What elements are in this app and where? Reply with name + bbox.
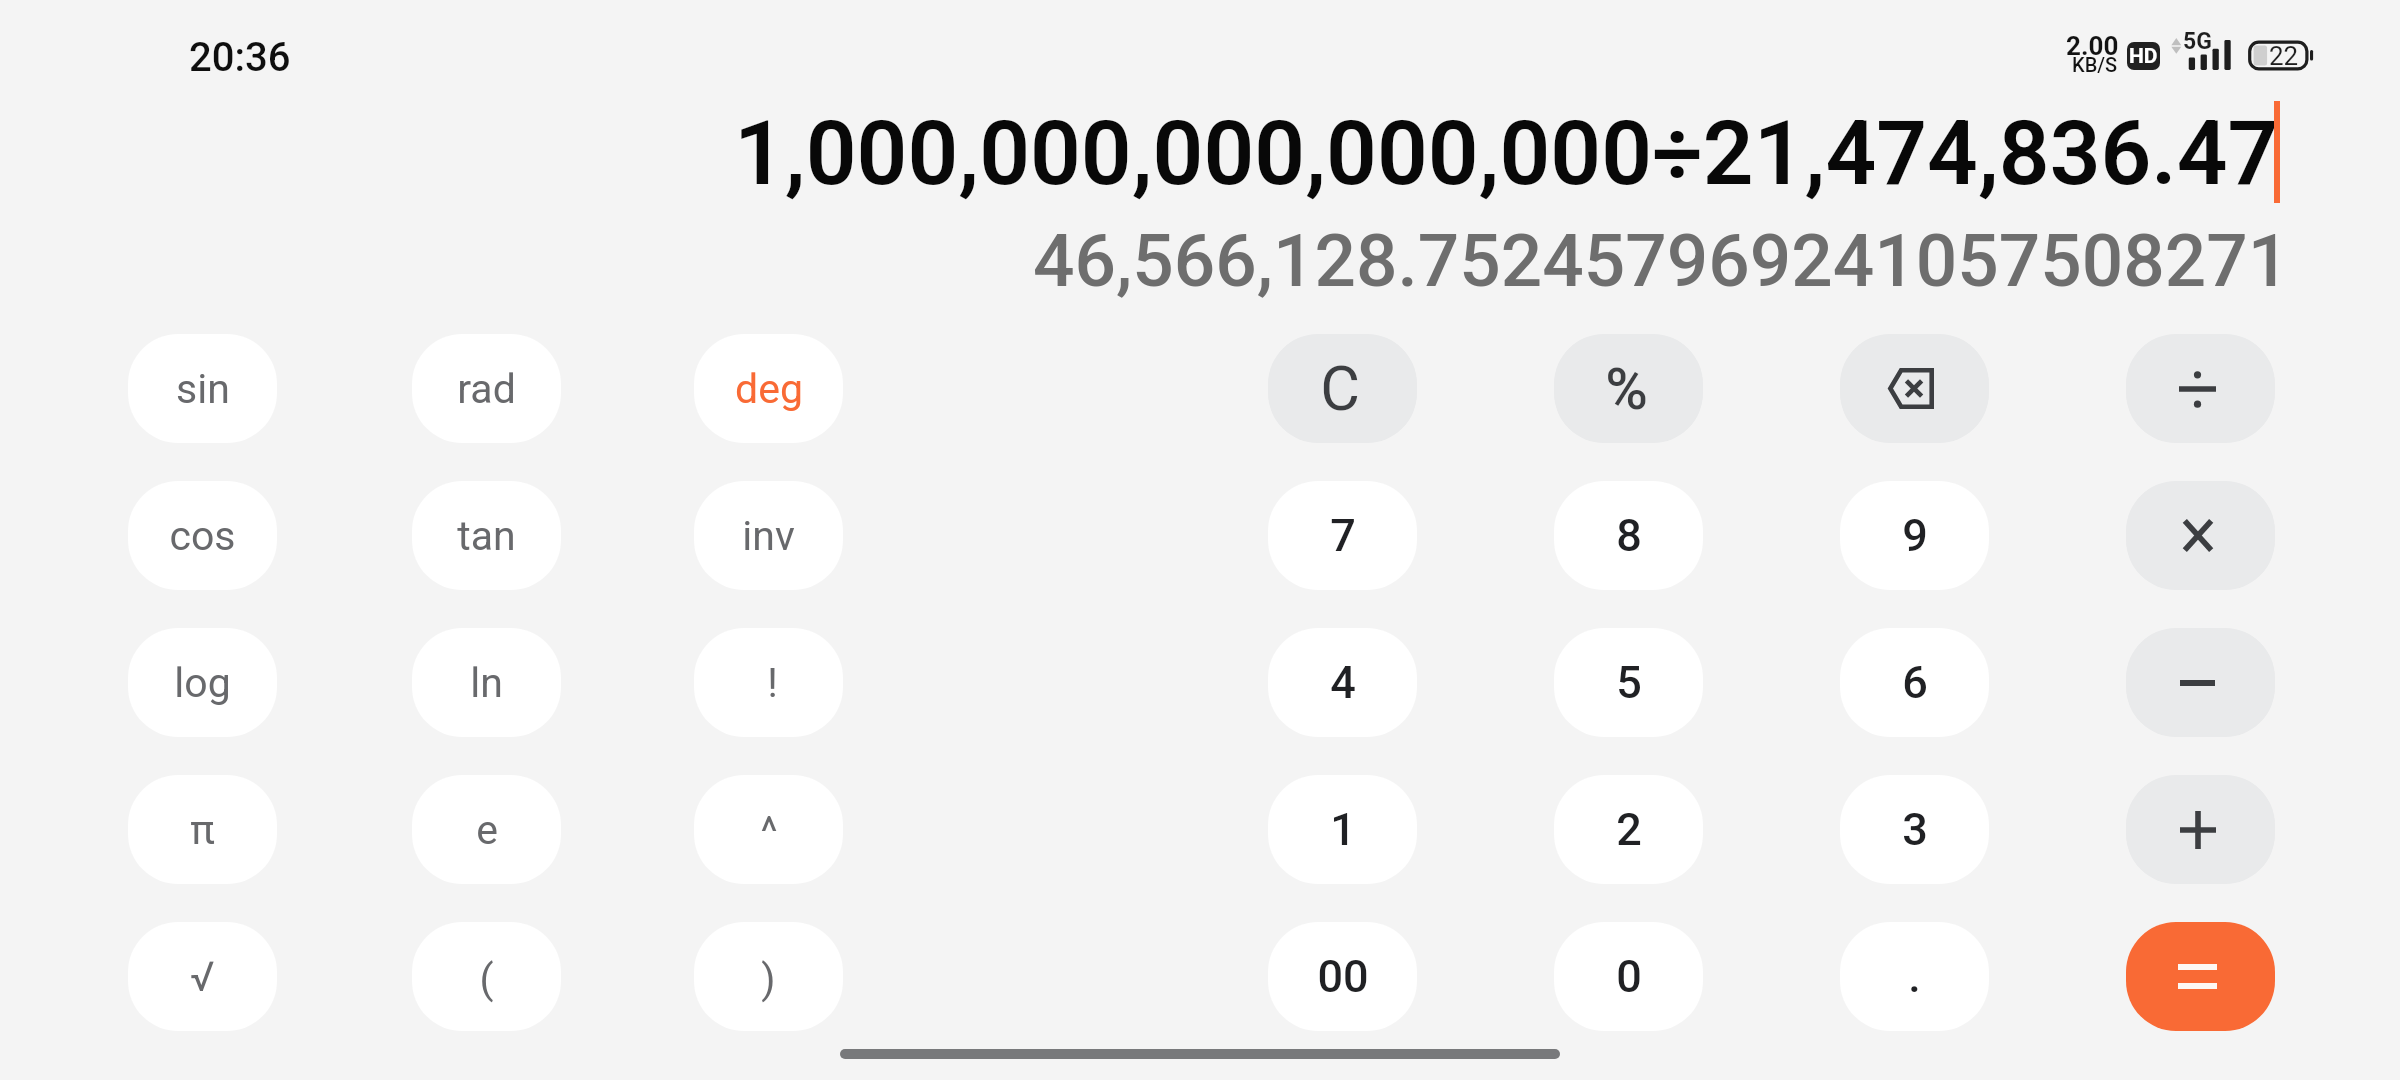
staticText: 00 bbox=[1317, 950, 1369, 1003]
button[interactable]: ) bbox=[694, 922, 843, 1031]
button[interactable]: tan bbox=[412, 481, 561, 590]
staticText: rad bbox=[457, 365, 516, 413]
staticText: ( bbox=[479, 955, 494, 1003]
staticText: tan bbox=[457, 512, 516, 560]
staticText: 2.00 bbox=[2066, 31, 2119, 61]
staticText: √ bbox=[190, 953, 215, 1001]
button[interactable]: 6 bbox=[1840, 628, 1989, 737]
button[interactable]: % bbox=[1554, 334, 1703, 443]
staticText: HD bbox=[2129, 44, 2158, 69]
staticText: C bbox=[1320, 353, 1360, 424]
button[interactable]: 7 bbox=[1268, 481, 1417, 590]
button[interactable]: ^ bbox=[694, 775, 843, 884]
button[interactable]: π bbox=[128, 775, 277, 884]
button[interactable]: inv bbox=[694, 481, 843, 590]
button[interactable]: Divide bbox=[2126, 334, 2275, 443]
button[interactable]: 4 bbox=[1268, 628, 1417, 737]
button[interactable]: ( bbox=[412, 922, 561, 1031]
button[interactable]: Backspace bbox=[1840, 334, 1989, 443]
staticText: 7 bbox=[1330, 509, 1356, 562]
button[interactable]: 9 bbox=[1840, 481, 1989, 590]
staticText: ^ bbox=[760, 808, 778, 856]
staticText: 9 bbox=[1902, 509, 1928, 562]
staticText: 1,000,000,000,000,000÷21,474,836.47 bbox=[734, 101, 2279, 205]
staticText: 2 bbox=[1616, 803, 1642, 856]
button[interactable]: rad bbox=[412, 334, 561, 443]
staticText: 5G bbox=[2183, 28, 2212, 55]
staticText: cos bbox=[169, 512, 236, 560]
staticText: 46,566,128.752457969241057508271 bbox=[1033, 218, 2290, 304]
button[interactable]: . bbox=[1840, 922, 1989, 1031]
staticText: KB/S bbox=[2072, 53, 2118, 76]
staticText: 0 bbox=[1616, 950, 1642, 1003]
button[interactable]: Plus bbox=[2126, 775, 2275, 884]
button[interactable]: Minus bbox=[2126, 628, 2275, 737]
staticText: 5 bbox=[1616, 656, 1642, 709]
button[interactable]: ln bbox=[412, 628, 561, 737]
staticText: 3 bbox=[1902, 803, 1928, 856]
staticText: log bbox=[174, 659, 231, 707]
staticText: ) bbox=[761, 955, 776, 1003]
button[interactable]: 00 bbox=[1268, 922, 1417, 1031]
staticText: 6 bbox=[1902, 656, 1928, 709]
staticText: ln bbox=[470, 659, 503, 707]
button[interactable]: log bbox=[128, 628, 277, 737]
button[interactable]: Equals bbox=[2126, 922, 2275, 1031]
button[interactable]: 3 bbox=[1840, 775, 1989, 884]
button[interactable]: Multiply bbox=[2126, 481, 2275, 590]
button[interactable]: √ bbox=[128, 922, 277, 1031]
button[interactable]: e bbox=[412, 775, 561, 884]
button[interactable]: 0 bbox=[1554, 922, 1703, 1031]
staticText: . bbox=[1908, 950, 1921, 1003]
staticText: % bbox=[1605, 355, 1648, 423]
staticText: inv bbox=[742, 512, 795, 560]
staticText: 20:36 bbox=[189, 34, 291, 81]
button[interactable]: ! bbox=[694, 628, 843, 737]
button[interactable]: cos bbox=[128, 481, 277, 590]
staticText: sin bbox=[176, 365, 230, 413]
button[interactable]: 8 bbox=[1554, 481, 1703, 590]
button[interactable]: C bbox=[1268, 334, 1417, 443]
staticText: ! bbox=[767, 659, 778, 707]
staticText: deg bbox=[735, 365, 803, 413]
button[interactable]: deg bbox=[694, 334, 843, 443]
button[interactable]: 1 bbox=[1268, 775, 1417, 884]
staticText: 22 bbox=[2269, 41, 2299, 71]
staticText: 4 bbox=[1330, 656, 1356, 709]
staticText: e bbox=[476, 806, 498, 854]
button[interactable]: 2 bbox=[1554, 775, 1703, 884]
staticText: π bbox=[190, 806, 215, 854]
staticText: 1 bbox=[1330, 803, 1356, 856]
button[interactable]: 5 bbox=[1554, 628, 1703, 737]
button[interactable]: sin bbox=[128, 334, 277, 443]
staticText: 8 bbox=[1616, 509, 1642, 562]
